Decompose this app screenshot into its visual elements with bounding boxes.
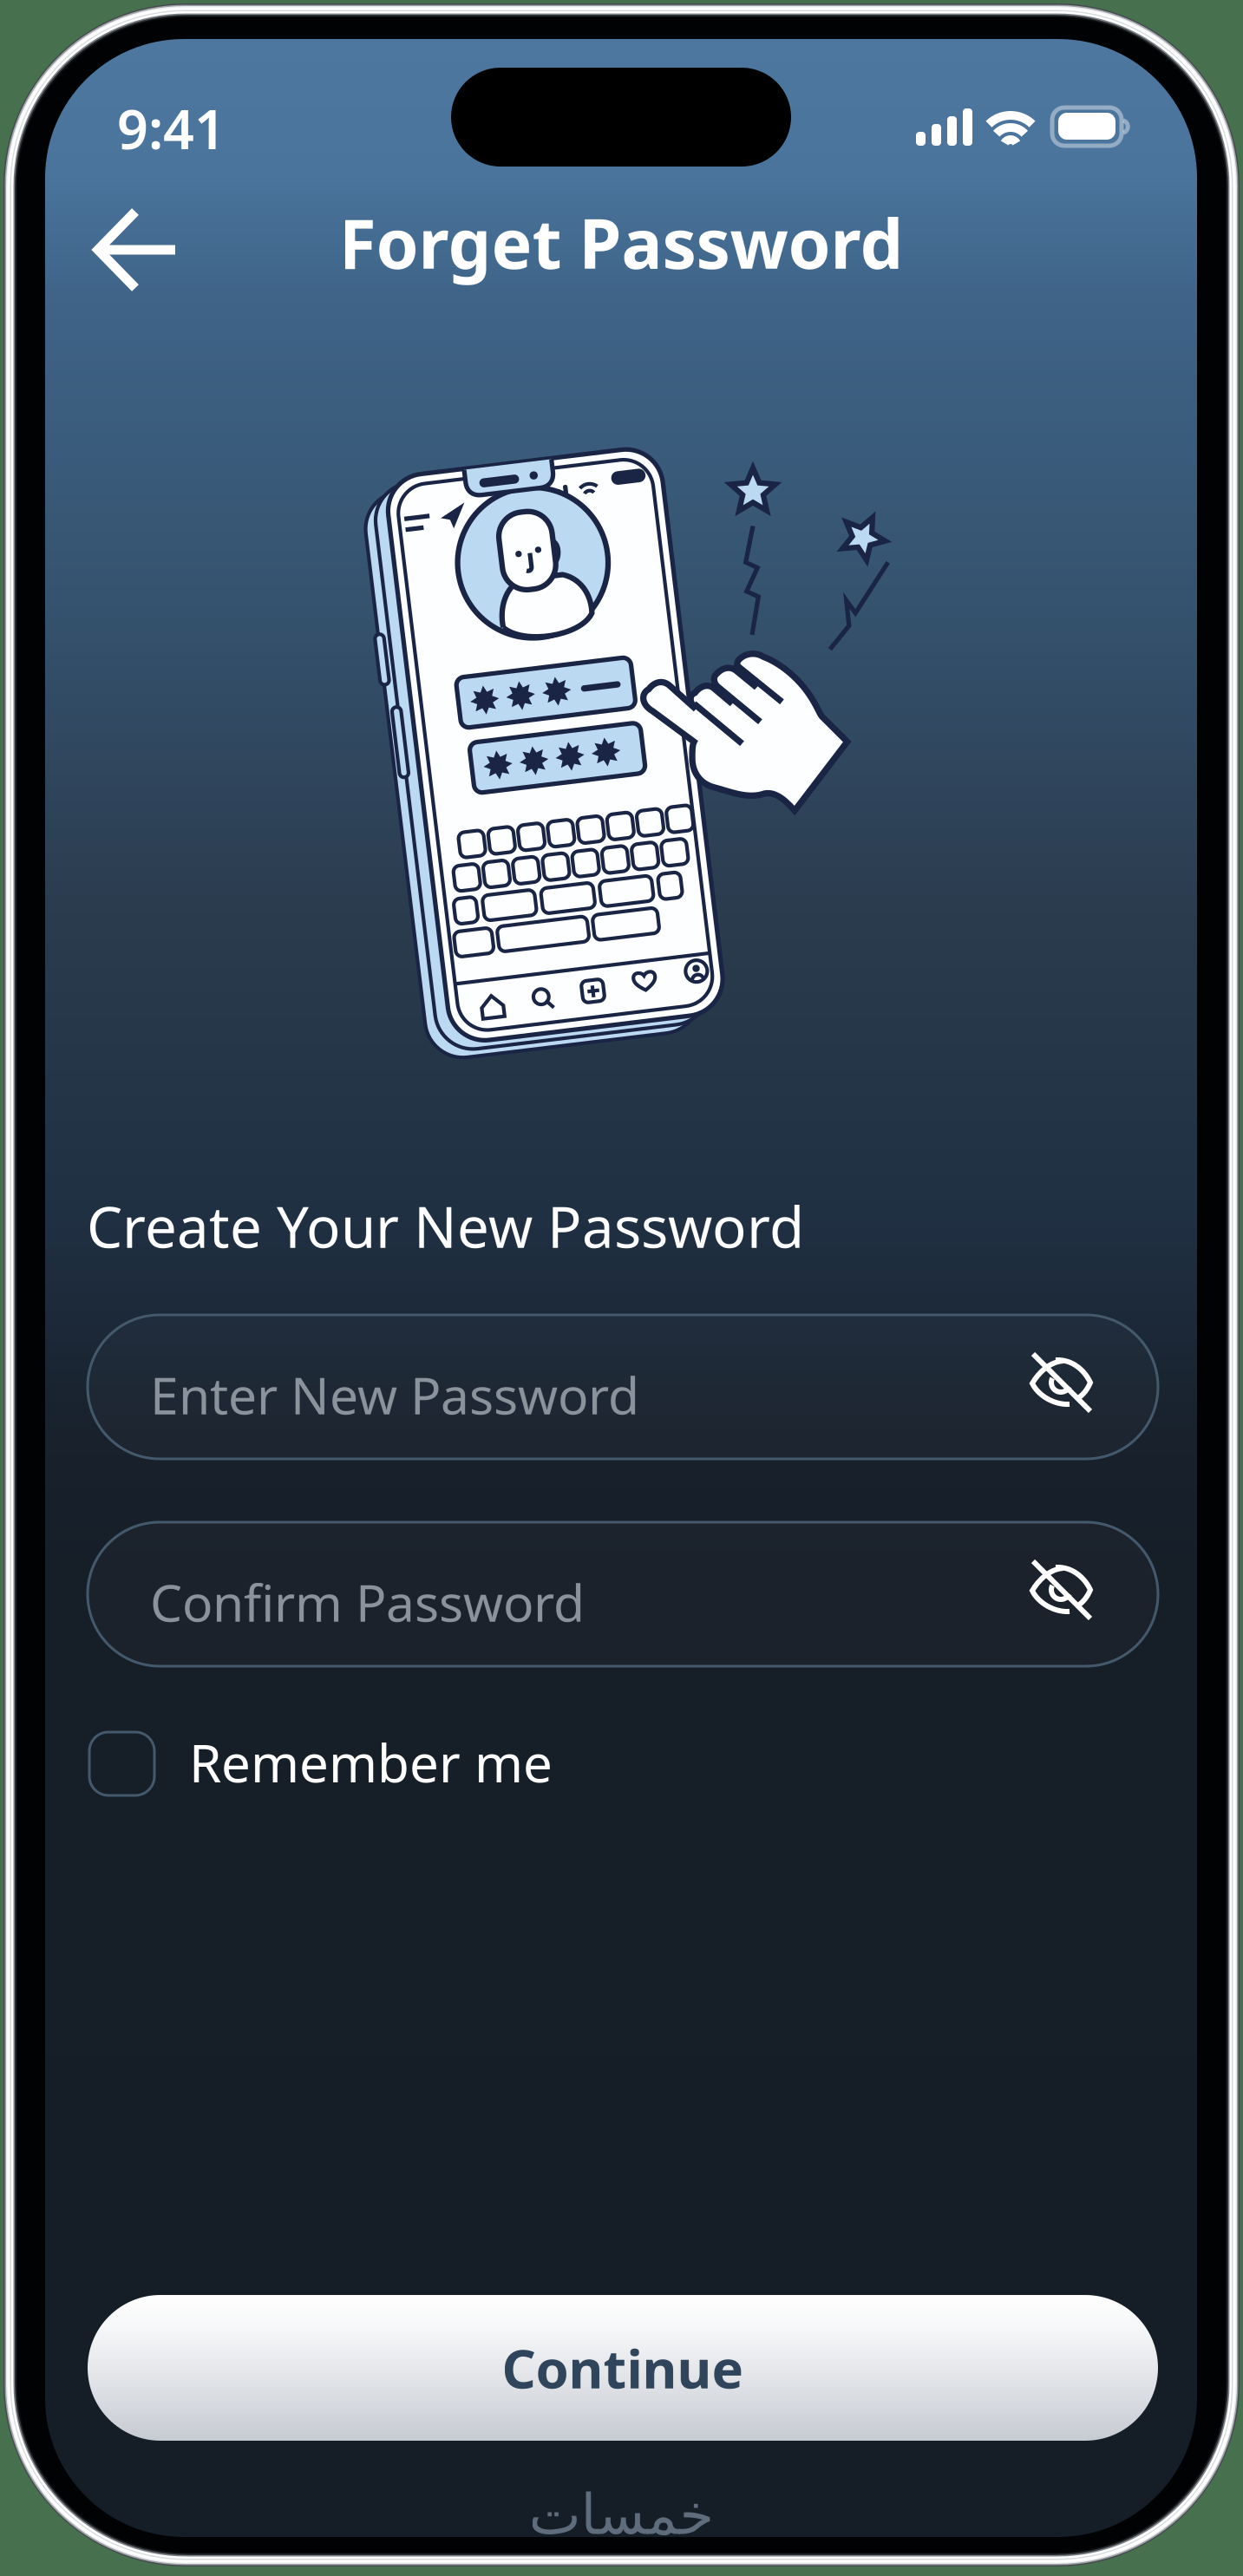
staticText: Remember me [189,1728,553,1797]
staticText: Continue [502,2333,744,2403]
button[interactable]: Remember me [88,1728,747,1849]
button[interactable]: Confirm Password [88,1522,1158,1666]
staticText: 9:41 [117,92,226,164]
button[interactable]: Continue [88,2295,1158,2441]
staticText: Enter New Password [150,1361,639,1428]
button[interactable]: Enter New Password [88,1315,1158,1459]
staticText: Confirm Password [150,1568,585,1636]
staticText: خمسات [528,2483,714,2546]
staticText: Forget Password [339,197,903,288]
button[interactable]: Back [75,189,197,311]
staticText: Create Your New Password [87,1188,804,1264]
